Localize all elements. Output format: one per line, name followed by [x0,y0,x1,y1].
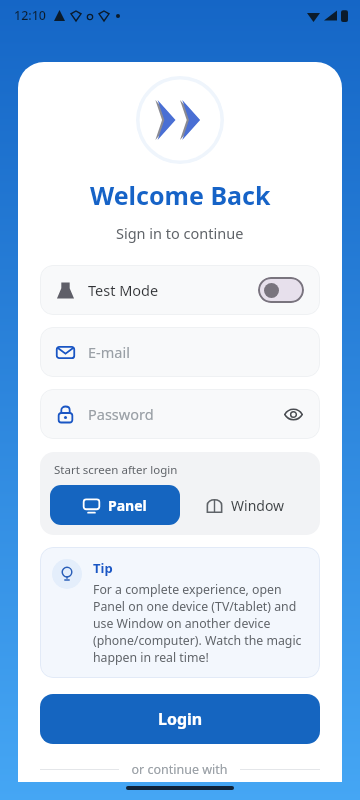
button[interactable]: Password [40,389,320,439]
staticText: Login [158,708,203,730]
button[interactable]: Login [40,694,320,744]
button[interactable]: Test Mode toggle [258,277,304,303]
button[interactable]: Test Mode [40,265,320,315]
staticText: Panel [108,496,147,515]
staticText: Welcome Back [90,178,271,212]
button[interactable]: Show password [282,403,304,425]
staticText: Password [88,404,154,424]
staticText: 12:10 [14,7,47,24]
button[interactable]: Panel [50,485,180,525]
staticText: or continue with [131,761,228,778]
button[interactable]: Window [180,485,310,525]
staticText: Test Mode [88,280,159,300]
staticText: Tip [93,559,113,577]
staticText: For a complete experience, open Panel on… [93,581,308,666]
staticText: Window [231,496,285,515]
button[interactable]: E-mail [40,327,320,377]
staticText: Start screen after login [54,462,178,478]
button[interactable]: Tip [40,547,320,678]
staticText: Sign in to continue [116,223,244,243]
staticText: E-mail [88,342,130,362]
